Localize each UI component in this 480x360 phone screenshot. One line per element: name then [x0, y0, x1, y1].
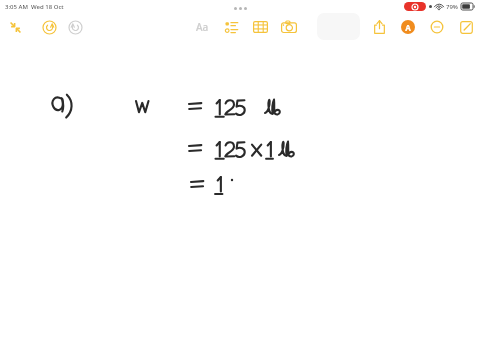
button[interactable]: New note	[455, 16, 477, 38]
staticText: 79%	[446, 3, 458, 11]
button[interactable]: Camera	[277, 15, 301, 39]
button[interactable]: Checklist	[219, 15, 243, 39]
button[interactable]: Undo	[38, 16, 60, 38]
button[interactable]: More options	[228, 3, 253, 14]
staticText: Aa	[196, 20, 209, 34]
button[interactable]: Redo	[64, 16, 86, 38]
button[interactable]: Markup	[397, 16, 419, 38]
button[interactable]: Share	[368, 16, 390, 38]
staticText: A	[405, 22, 411, 33]
button[interactable]: Search	[426, 16, 448, 38]
staticText: 3:05 AM Wed 18 Oct	[5, 3, 64, 11]
button[interactable]: Aa	[190, 15, 214, 39]
button[interactable]: Exit full screen	[4, 16, 26, 38]
button[interactable]: Insert table	[248, 15, 272, 39]
